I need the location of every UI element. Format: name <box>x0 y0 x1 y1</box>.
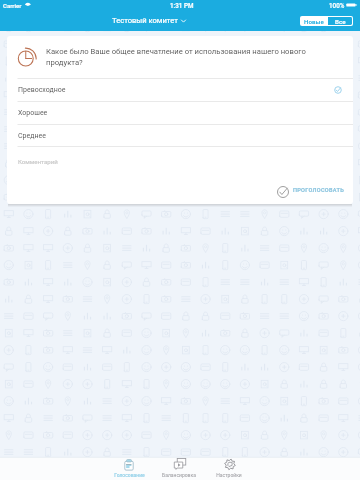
staticText: ПРОГОЛОСОВАТЬ <box>293 187 344 194</box>
button[interactable]: Проголосовать <box>276 184 345 196</box>
staticText: Комментарий <box>18 158 58 165</box>
button[interactable]: Комментарий <box>7 146 353 171</box>
button[interactable]: Балансировка <box>154 457 204 478</box>
staticText: Какое было Ваше общее впечатление от исп… <box>46 47 338 66</box>
other: Проголосовать <box>277 186 289 198</box>
staticText: Настройки <box>216 472 242 478</box>
other: Выбрано <box>334 86 342 94</box>
staticText: 100% <box>329 2 345 9</box>
button[interactable]: Превосходное <box>7 78 353 101</box>
staticText: Среднее <box>18 132 46 140</box>
button[interactable]: Голосование <box>104 457 154 478</box>
button[interactable]: Все <box>328 17 352 25</box>
staticText: Новые <box>304 18 324 25</box>
staticText: Все <box>335 18 346 25</box>
staticText: Превосходное <box>18 86 66 94</box>
staticText: Тестовый комитет <box>112 16 178 25</box>
button[interactable]: Хорошее <box>7 101 353 124</box>
staticText: Голосование <box>114 472 145 478</box>
button[interactable]: Новые <box>300 16 328 26</box>
staticText: Carrier <box>3 2 22 9</box>
staticText: Балансировка <box>162 472 196 478</box>
button[interactable]: Настройки <box>204 457 254 478</box>
button[interactable]: Тестовый комитет <box>109 14 189 27</box>
staticText: Хорошее <box>18 109 48 117</box>
button[interactable]: Среднее <box>7 124 353 147</box>
staticText: 1:31 PM <box>170 2 194 9</box>
